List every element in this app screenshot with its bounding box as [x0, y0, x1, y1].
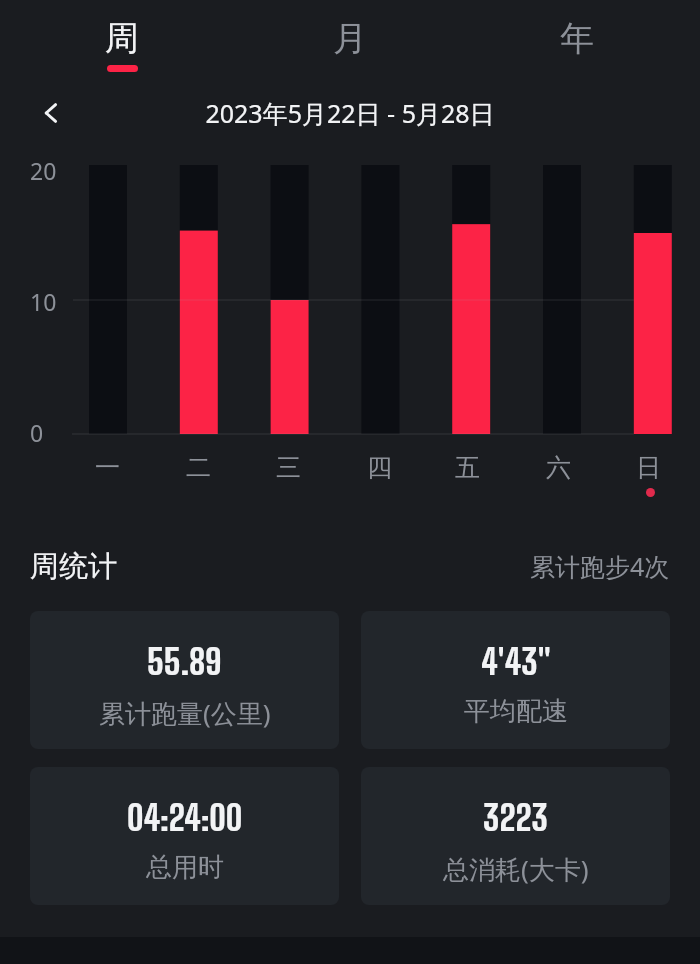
staticText: 04:24:00 — [127, 797, 243, 839]
staticText: 累计跑步4次 — [530, 549, 670, 583]
button[interactable]: 周 — [76, 8, 168, 82]
button[interactable]: 3223 — [361, 767, 670, 905]
staticText: 一 — [95, 452, 120, 483]
button[interactable]: Previous week — [26, 89, 74, 137]
staticText: 二 — [186, 452, 211, 483]
staticText: 0 — [30, 417, 44, 448]
staticText: 4'43" — [481, 641, 551, 683]
staticText: 周 — [105, 17, 139, 60]
staticText: 平均配速 — [464, 695, 568, 728]
staticText: 10 — [30, 286, 57, 317]
staticText: 3223 — [483, 797, 548, 839]
staticText: 四 — [367, 452, 392, 483]
staticText: 总消耗(大卡) — [443, 851, 589, 887]
staticText: 月 — [333, 17, 367, 60]
button[interactable]: 55.89 — [30, 611, 339, 749]
staticText: 总用时 — [146, 851, 224, 884]
button[interactable]: 月 — [304, 8, 396, 82]
button[interactable]: 4'43" — [361, 611, 670, 749]
button[interactable]: 04:24:00 — [30, 767, 339, 905]
staticText: 六 — [546, 452, 571, 483]
button[interactable]: 年 — [531, 8, 623, 82]
staticText: 日 — [636, 452, 661, 483]
staticText: 2023年5月22日 - 5月28日 — [205, 96, 495, 130]
staticText: 20 — [30, 155, 57, 186]
staticText: 累计跑量(公里) — [99, 695, 271, 731]
staticText: 年 — [560, 17, 594, 60]
staticText: 55.89 — [147, 641, 222, 683]
staticText: 五 — [455, 452, 480, 483]
staticText: 周统计 — [30, 548, 117, 585]
staticText: 三 — [276, 452, 301, 483]
